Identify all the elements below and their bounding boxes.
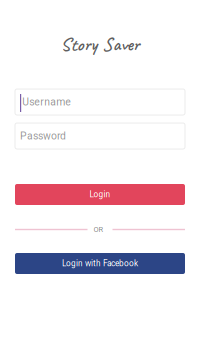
button[interactable]: Password: [15, 123, 185, 149]
button[interactable]: Login with Facebook: [15, 253, 185, 274]
staticText: Login with Facebook: [62, 259, 138, 268]
button[interactable]: Login: [15, 184, 185, 205]
staticText: Username: [22, 96, 71, 108]
staticText: Story Saver: [60, 32, 139, 56]
button[interactable]: Username: [15, 89, 185, 115]
staticText: Login: [89, 190, 110, 199]
staticText: OR: [93, 225, 103, 234]
staticText: Password: [20, 130, 66, 142]
